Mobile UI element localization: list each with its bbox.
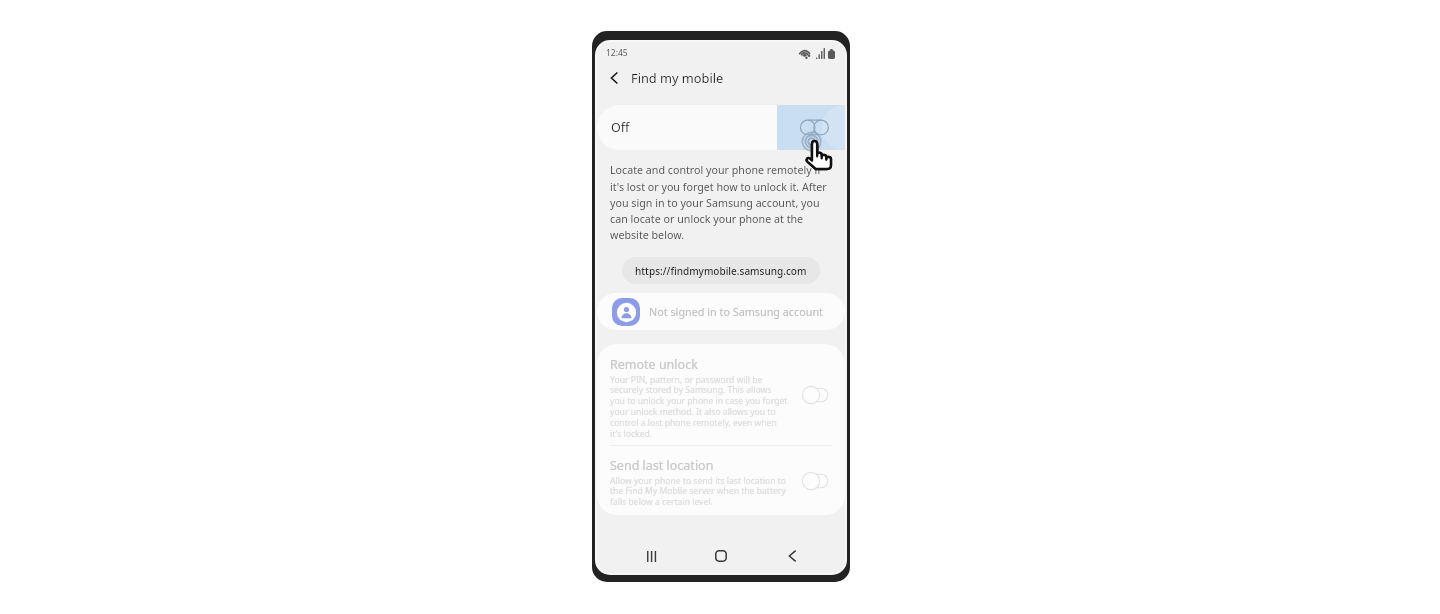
staticText: Not signed in to Samsung account bbox=[649, 304, 823, 319]
staticText: Locate and control your phone remotely i… bbox=[610, 163, 827, 242]
button[interactable]: https://findmymobile.samsung.com bbox=[622, 257, 820, 284]
staticText: Your PIN, pattern, or password will be s… bbox=[610, 374, 788, 440]
staticText: Send last location bbox=[610, 457, 714, 474]
button[interactable]: Toggle bbox=[803, 385, 829, 405]
staticText: Find my mobile bbox=[631, 69, 724, 86]
staticText: Allow your phone to send its last locati… bbox=[610, 475, 788, 508]
button[interactable]: Not signed in to Samsung account bbox=[597, 293, 845, 330]
staticText: Remote unlock bbox=[610, 356, 698, 373]
button[interactable]: Back bbox=[775, 539, 809, 573]
button[interactable]: Recent apps bbox=[634, 539, 668, 573]
button[interactable]: Toggle bbox=[803, 471, 829, 491]
button[interactable]: Navigate up bbox=[604, 68, 624, 88]
button[interactable]: Home bbox=[704, 539, 738, 573]
staticText: https://findmymobile.samsung.com bbox=[635, 264, 807, 278]
button[interactable]: Off bbox=[597, 105, 845, 150]
staticText: Off bbox=[611, 119, 630, 136]
staticText: 12:45 bbox=[606, 47, 628, 59]
